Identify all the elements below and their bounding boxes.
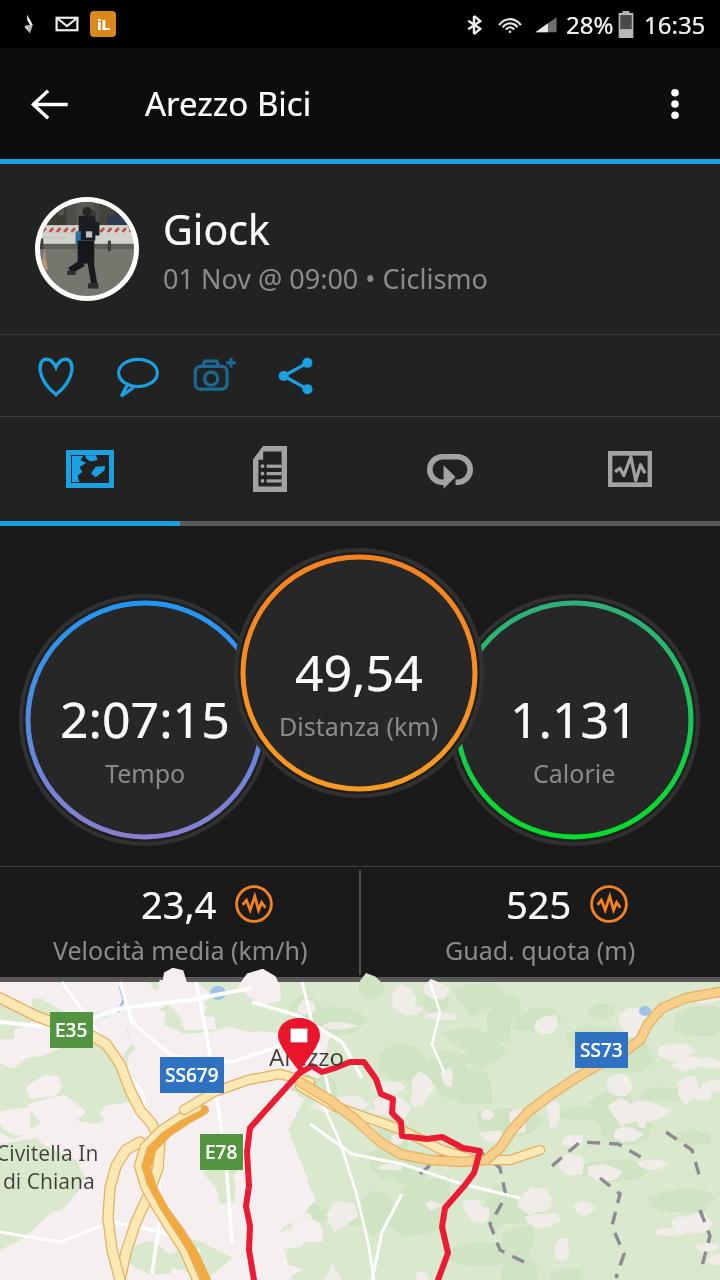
button[interactable]: Laps: [360, 417, 540, 521]
staticText: 2:07:15: [60, 685, 230, 753]
staticText: l di Chiana: [0, 1167, 95, 1196]
staticText: SS73: [580, 1037, 623, 1063]
button[interactable]: Details: [180, 417, 360, 521]
staticText: 28%: [566, 8, 614, 41]
staticText: 23,4: [141, 878, 217, 930]
staticText: 525: [506, 878, 572, 930]
staticText: E78: [205, 1139, 238, 1165]
button[interactable]: Like: [20, 340, 92, 412]
button[interactable]: Comment: [102, 340, 174, 412]
staticText: 1.131: [510, 685, 638, 753]
button[interactable]: Map of route: [0, 982, 720, 1280]
button[interactable]: 525: [360, 867, 720, 977]
staticText: Calorie: [533, 756, 616, 790]
staticText: Civitella In: [0, 1139, 99, 1168]
staticText: Arezzo: [269, 1040, 345, 1073]
staticText: Giock: [163, 201, 270, 257]
staticText: Distanza (km): [279, 709, 439, 743]
staticText: 01 Nov @ 09:00 • Ciclismo: [163, 260, 488, 297]
button[interactable]: Share: [260, 340, 332, 412]
button[interactable]: Analysis: [540, 417, 720, 521]
staticText: 49,54: [295, 638, 423, 706]
button[interactable]: 23,4: [0, 867, 360, 977]
button[interactable]: Back: [16, 71, 82, 137]
staticText: iL: [97, 14, 110, 34]
button[interactable]: Giock: [0, 164, 720, 334]
staticText: Arezzo Bici: [145, 81, 312, 126]
staticText: Guad. quota (m): [445, 933, 636, 967]
staticText: 16:35: [644, 8, 706, 41]
button[interactable]: Add photo: [180, 340, 252, 412]
staticText: Velocità media (km/h): [53, 933, 308, 967]
staticText: E35: [55, 1017, 88, 1043]
staticText: SS679: [165, 1062, 219, 1088]
staticText: Tempo: [105, 756, 186, 790]
button[interactable]: Map: [0, 417, 180, 521]
button[interactable]: More options: [644, 73, 706, 135]
